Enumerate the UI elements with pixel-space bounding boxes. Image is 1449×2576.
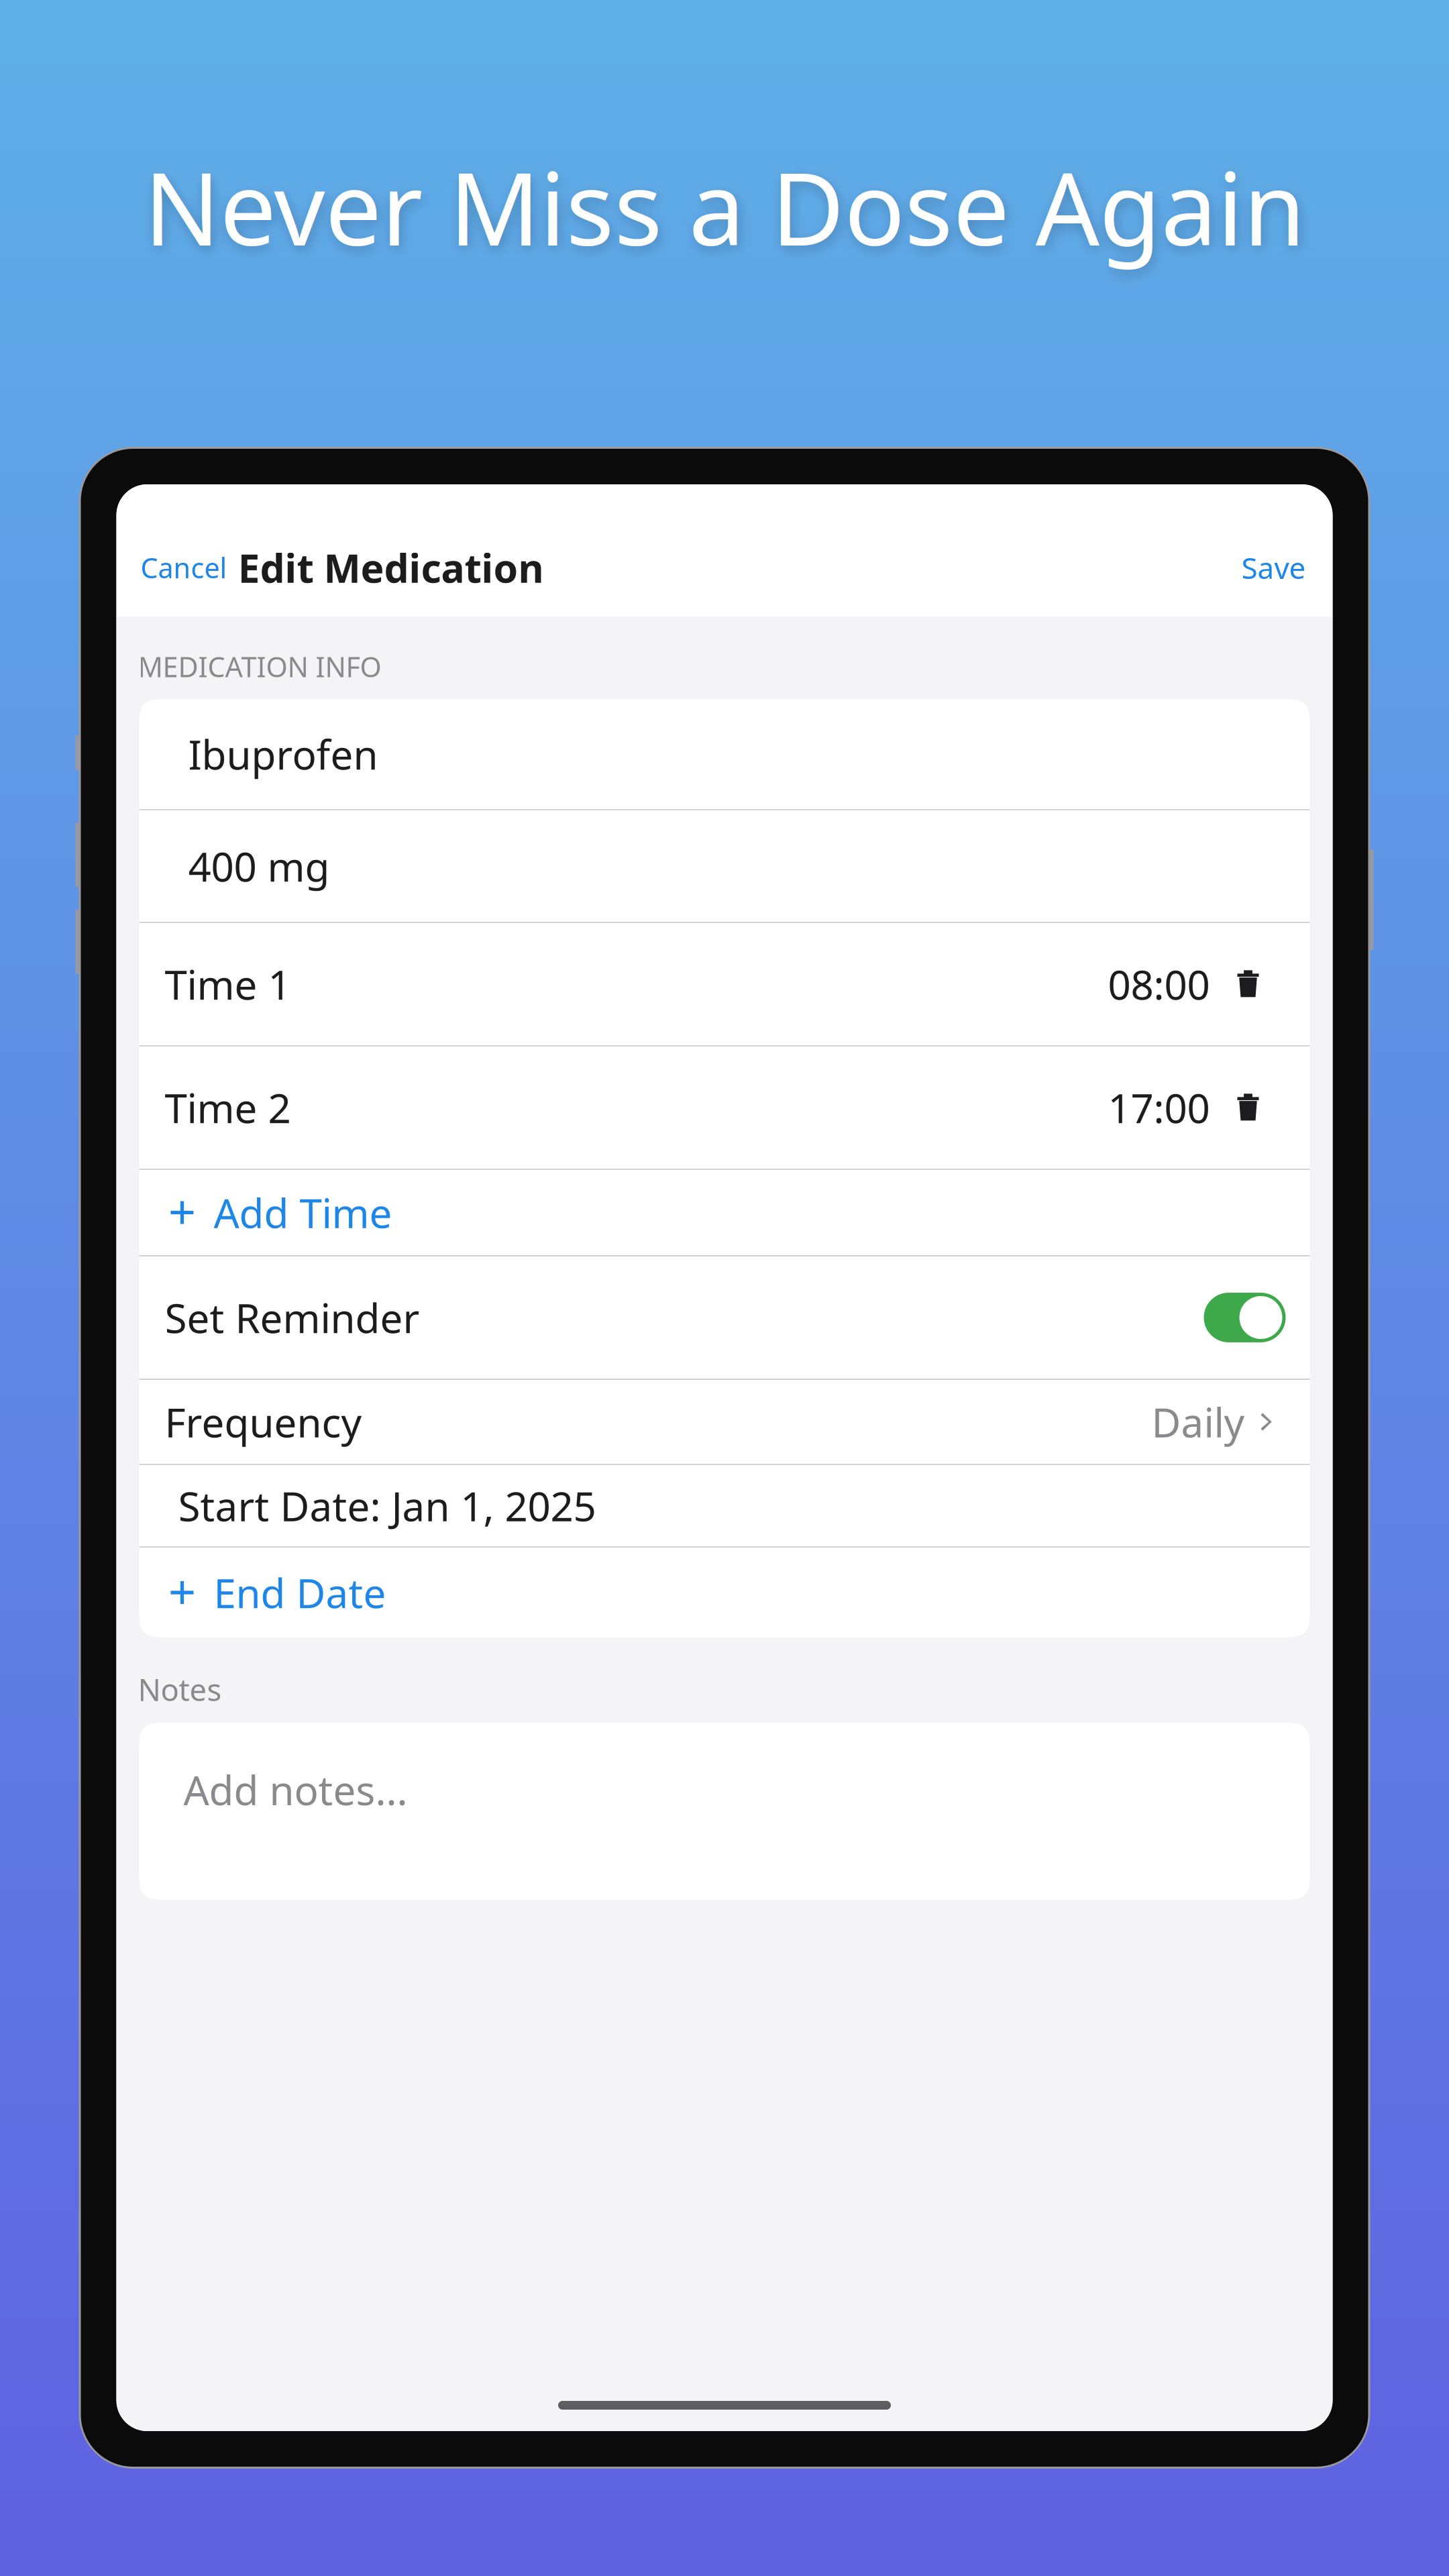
button[interactable]: Cancel — [116, 533, 232, 602]
staticText: 17:00 — [1108, 1081, 1210, 1134]
staticText: 08:00 — [1108, 957, 1210, 1011]
staticText: Never Miss a Dose Again — [144, 140, 1305, 273]
staticText: Cancel — [141, 549, 227, 586]
staticText: Start Date: Jan 1, 2025 — [178, 1479, 596, 1532]
staticText: Time 1 — [165, 957, 291, 1011]
button[interactable]: Add notes... — [139, 1723, 1310, 1900]
button[interactable]: Frequency — [139, 1380, 1310, 1464]
staticText: Add Time — [214, 1186, 392, 1239]
staticText: Set Reminder — [165, 1291, 420, 1344]
staticText: Save — [1241, 548, 1306, 587]
button[interactable]: Start Date: Jan 1, 2025 — [139, 1465, 1310, 1546]
staticText: MEDICATION INFO — [138, 648, 381, 685]
staticText: Time 2 — [165, 1081, 291, 1134]
button[interactable]: Save — [1225, 533, 1333, 602]
staticText: Edit Medication — [238, 541, 544, 594]
button[interactable]: End Date — [139, 1548, 1310, 1638]
staticText: End Date — [214, 1566, 386, 1619]
staticText: Add notes... — [183, 1763, 408, 1816]
button[interactable]: Set Reminder — [139, 1256, 1310, 1379]
button[interactable]: 400 mg — [139, 810, 1310, 922]
staticText: Daily — [1151, 1395, 1245, 1449]
staticText: 400 mg — [188, 839, 330, 893]
button[interactable]: Ibuprofen — [139, 699, 1310, 809]
staticText: Notes — [138, 1669, 222, 1709]
staticText: Frequency — [165, 1395, 362, 1449]
button[interactable]: Add Time — [139, 1170, 1310, 1255]
staticText: Ibuprofen — [188, 727, 378, 781]
button[interactable]: Time 1 — [139, 923, 1310, 1045]
button[interactable]: Time 2 — [139, 1046, 1310, 1169]
